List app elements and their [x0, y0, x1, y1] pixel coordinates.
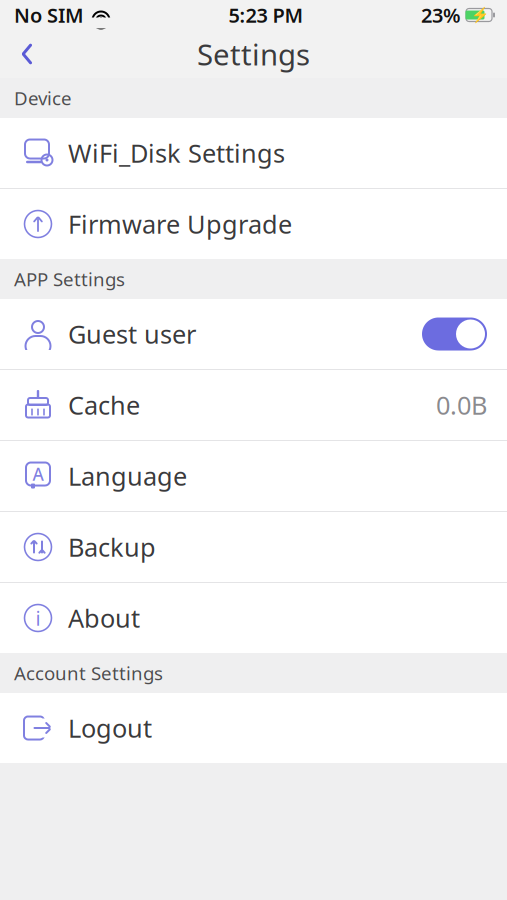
staticText: Settings: [197, 34, 310, 73]
staticText: Firmware Upgrade: [68, 207, 292, 241]
staticText: A: [32, 462, 43, 485]
staticText: Device: [14, 86, 72, 110]
staticText: 23%: [421, 2, 461, 28]
button[interactable]: Cache: [0, 370, 507, 440]
button[interactable]: A: [0, 441, 507, 511]
button[interactable]: Back: [0, 30, 54, 78]
staticText: About: [68, 601, 140, 635]
button[interactable]: i: [0, 583, 507, 653]
staticText: Account Settings: [14, 661, 163, 685]
staticText: No SIM: [14, 2, 84, 28]
staticText: 5:23 PM: [228, 2, 303, 28]
staticText: 0.0B: [436, 388, 487, 422]
staticText: Cache: [68, 388, 140, 422]
staticText: APP Settings: [14, 267, 125, 291]
staticText: Guest user: [68, 317, 196, 351]
staticText: Language: [68, 459, 187, 493]
staticText: i: [35, 605, 40, 631]
button[interactable]: Firmware Upgrade: [0, 189, 507, 259]
button[interactable]: Guest user: [0, 299, 507, 369]
staticText: ⚡: [471, 7, 489, 23]
staticText: WiFi_Disk Settings: [68, 136, 285, 170]
staticText: Backup: [68, 530, 156, 564]
staticText: Logout: [68, 711, 152, 745]
button[interactable]: Logout: [0, 693, 507, 763]
button[interactable]: Backup: [0, 512, 507, 582]
button[interactable]: WiFi_Disk Settings: [0, 118, 507, 188]
